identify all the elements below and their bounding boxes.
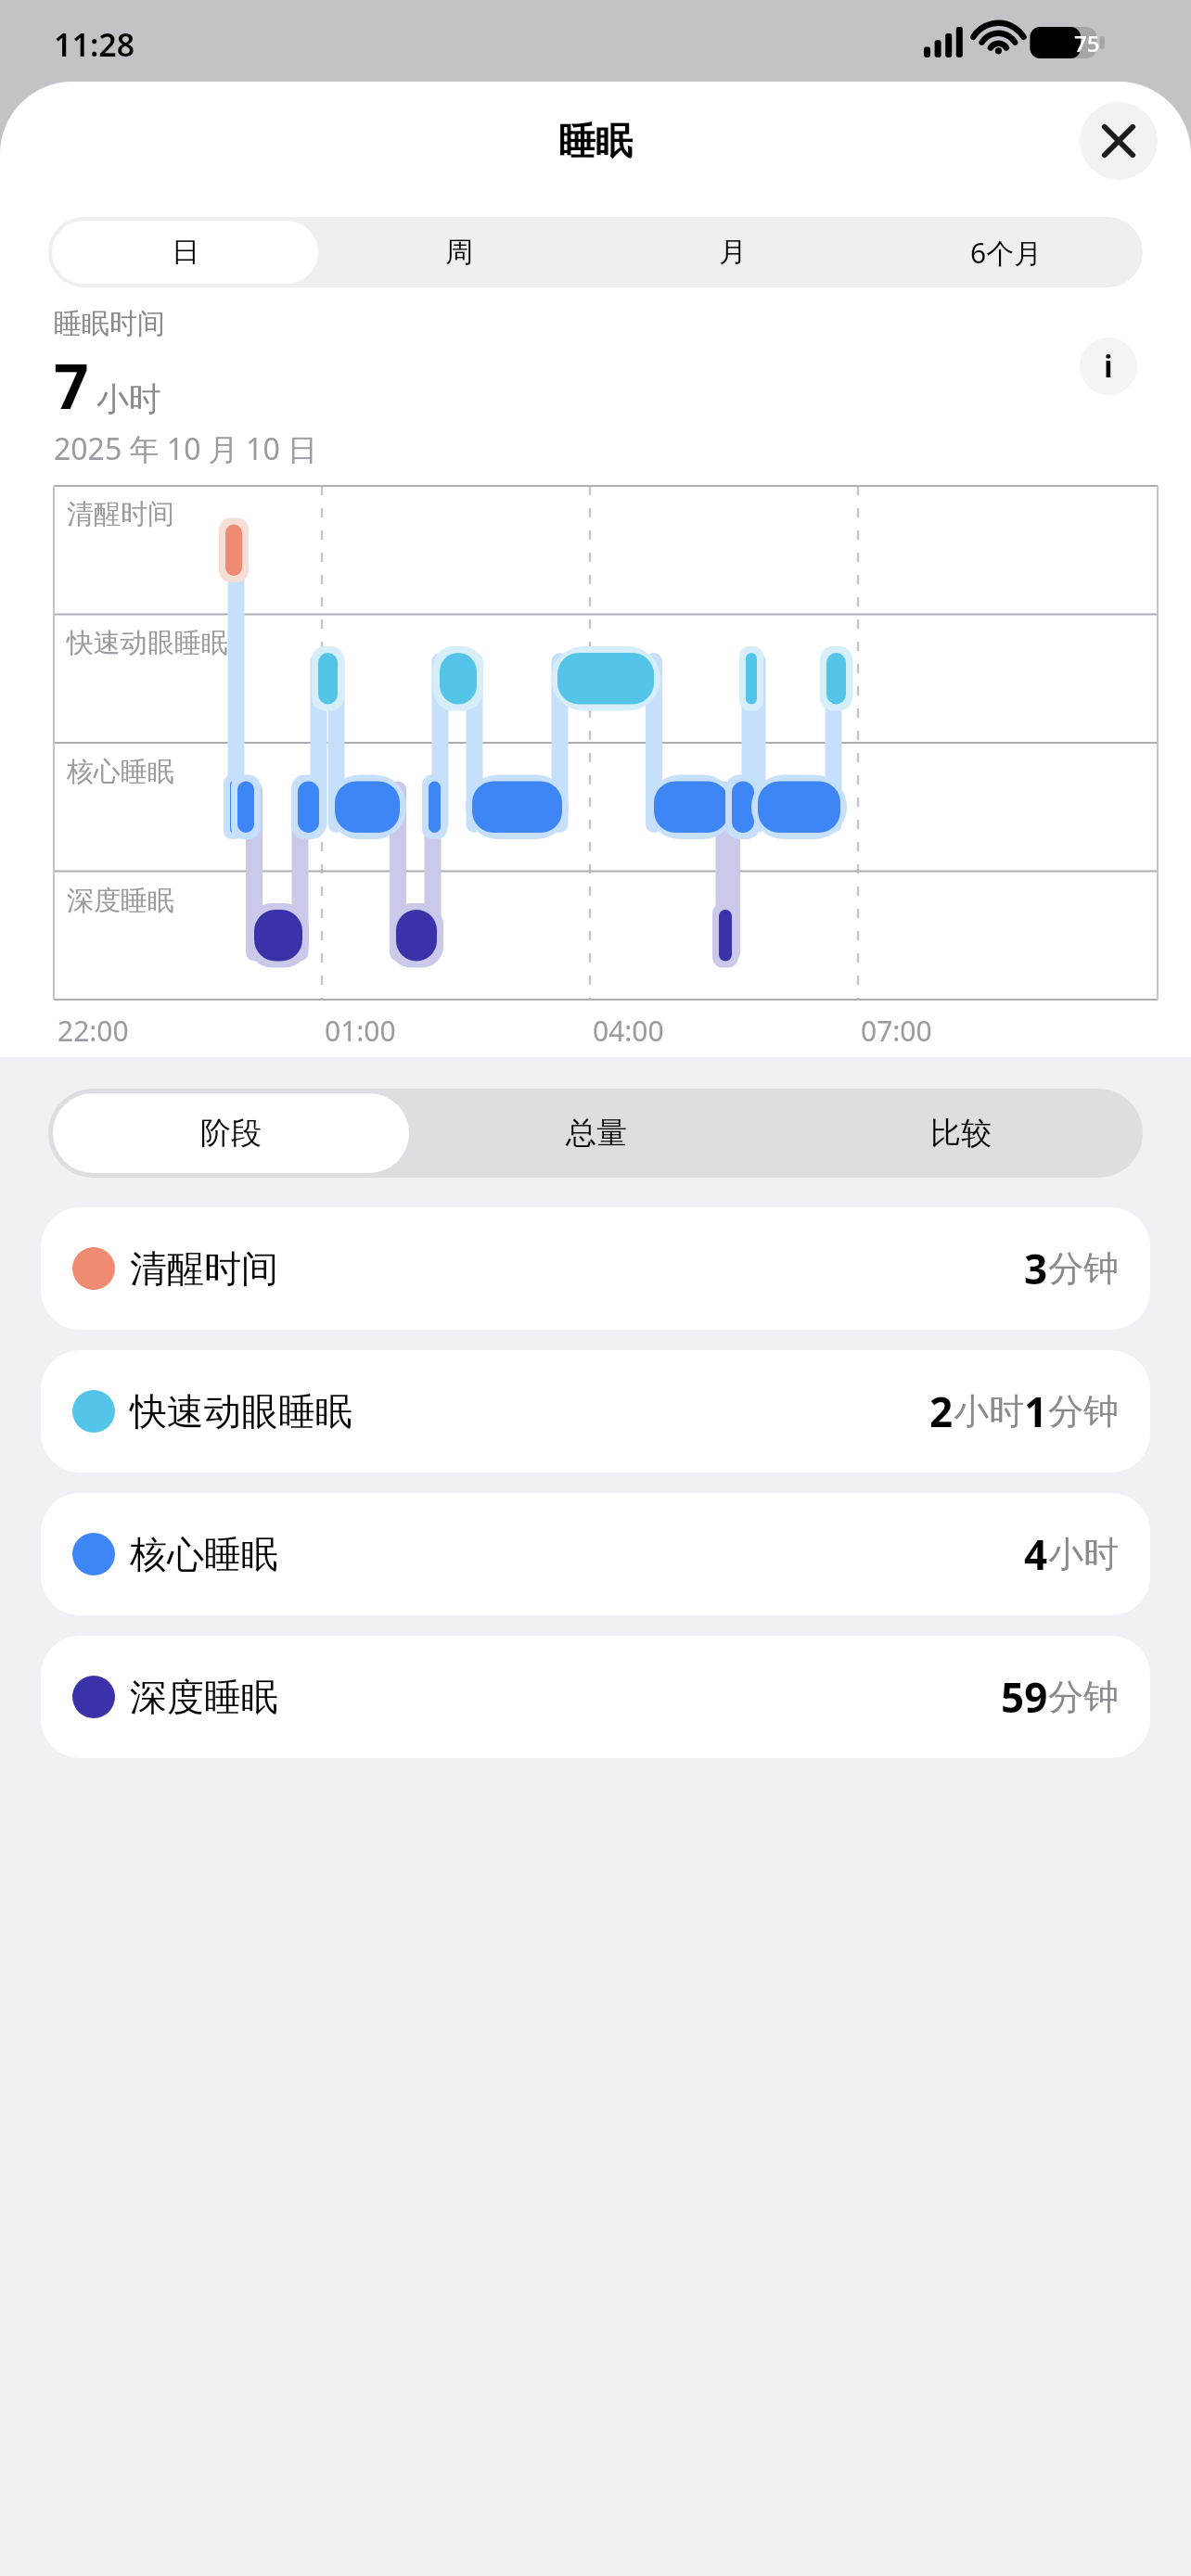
- staticText: 7: [54, 343, 89, 427]
- staticText: 周: [445, 235, 473, 270]
- button[interactable]: 阶段: [53, 1093, 409, 1173]
- staticText: 小时: [96, 378, 161, 419]
- staticText: 22:00: [58, 1012, 129, 1050]
- button[interactable]: 深度睡眠: [41, 1636, 1150, 1758]
- staticText: 4: [1024, 1526, 1048, 1582]
- staticText: 快速动眼睡眠: [67, 626, 228, 660]
- staticText: 小时: [1048, 1532, 1119, 1576]
- staticText: 核心睡眠: [67, 755, 174, 789]
- button[interactable]: 核心睡眠: [41, 1493, 1150, 1615]
- staticText: 小时: [954, 1389, 1024, 1434]
- staticText: 快速动眼睡眠: [130, 1388, 352, 1435]
- staticText: 6个月: [970, 234, 1043, 272]
- staticText: 日: [172, 235, 199, 270]
- staticText: 3: [1024, 1241, 1048, 1296]
- button[interactable]: 日: [52, 221, 318, 284]
- button[interactable]: 周: [326, 221, 592, 284]
- staticText: i: [1104, 346, 1113, 387]
- staticText: 59: [1001, 1669, 1048, 1725]
- button[interactable]: 比较: [783, 1093, 1138, 1173]
- staticText: 比较: [930, 1114, 992, 1153]
- staticText: 04:00: [593, 1012, 664, 1050]
- button[interactable]: 清醒时间: [41, 1207, 1150, 1330]
- staticText: 分钟: [1048, 1246, 1119, 1291]
- staticText: 11:28: [54, 23, 135, 66]
- staticText: 75: [1074, 28, 1100, 58]
- staticText: 01:00: [325, 1012, 396, 1050]
- button[interactable]: 6个月: [873, 221, 1139, 284]
- staticText: 睡眠时间: [54, 306, 165, 341]
- button[interactable]: 关闭: [1080, 102, 1158, 180]
- staticText: 清醒时间: [130, 1245, 278, 1292]
- staticText: 清醒时间: [67, 497, 174, 531]
- staticText: 07:00: [861, 1012, 932, 1050]
- staticText: 1: [1024, 1384, 1048, 1439]
- button[interactable]: 总量: [418, 1093, 774, 1173]
- button[interactable]: 信息: [1080, 338, 1137, 395]
- staticText: 2: [929, 1384, 954, 1439]
- staticText: 分钟: [1048, 1389, 1119, 1434]
- staticText: 睡眠: [558, 118, 633, 164]
- button[interactable]: 月: [599, 221, 865, 284]
- staticText: 总量: [566, 1114, 627, 1153]
- staticText: 阶段: [200, 1114, 262, 1153]
- staticText: 月: [719, 235, 747, 270]
- staticText: 核心睡眠: [130, 1531, 278, 1577]
- staticText: 深度睡眠: [130, 1674, 278, 1720]
- staticText: 深度睡眠: [67, 884, 174, 918]
- staticText: 分钟: [1048, 1675, 1119, 1719]
- button[interactable]: 快速动眼睡眠: [41, 1350, 1150, 1473]
- staticText: 2025 年 10 月 10 日: [54, 428, 318, 469]
